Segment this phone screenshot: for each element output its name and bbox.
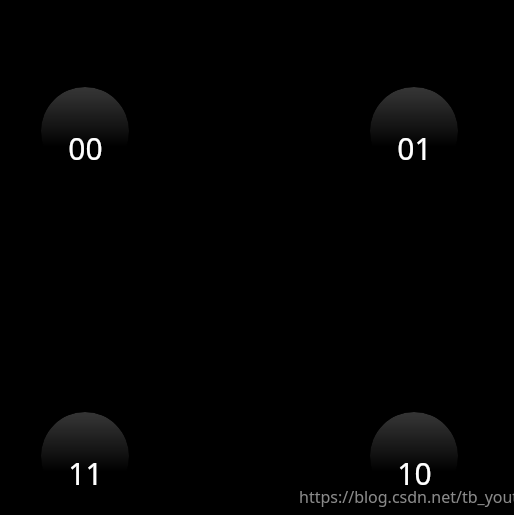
staticText: 00 bbox=[68, 128, 103, 169]
button[interactable]: 10 bbox=[370, 412, 458, 500]
button[interactable]: 11 bbox=[41, 412, 129, 500]
button[interactable]: 01 bbox=[370, 87, 458, 175]
staticText: 11 bbox=[68, 453, 103, 494]
other: Karnaugh map node grid bbox=[0, 0, 514, 515]
staticText: 01 bbox=[397, 128, 432, 169]
button[interactable]: 00 bbox=[41, 87, 129, 175]
staticText: 10 bbox=[397, 453, 432, 494]
staticText: https://blog.csdn.net/tb_youth bbox=[299, 486, 514, 508]
